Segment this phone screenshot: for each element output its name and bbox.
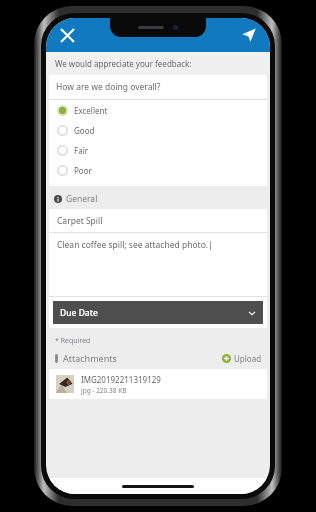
button[interactable]: Due Date — [53, 301, 263, 324]
staticText: Attachments — [63, 352, 117, 364]
staticText: Clean coffee spill; see attached photo. — [57, 239, 209, 251]
staticText: Carpet Spill — [57, 215, 103, 227]
button[interactable]: Fair — [49, 140, 267, 160]
staticText: Fair — [74, 145, 89, 156]
button[interactable]: Excellent — [49, 100, 267, 120]
staticText: IMG20192211319129 — [81, 374, 161, 385]
staticText: Poor — [74, 165, 92, 176]
button[interactable]: Poor — [49, 160, 267, 180]
staticText: Good — [74, 125, 95, 136]
button[interactable]: Upload — [222, 353, 262, 364]
staticText: Upload — [234, 353, 262, 364]
staticText: Excellent — [74, 105, 108, 116]
staticText: jpg - 220.38 KB — [81, 386, 127, 395]
button[interactable]: Clean coffee spill; see attached photo. — [49, 233, 267, 296]
button[interactable]: Send — [234, 20, 264, 50]
button[interactable]: IMG20192211319129 — [49, 369, 267, 399]
button[interactable]: Close — [52, 20, 82, 50]
staticText: How are we doing overall? — [56, 81, 161, 93]
button[interactable]: Carpet Spill — [49, 209, 267, 232]
staticText: General — [66, 193, 98, 205]
staticText: We would appreciate your feedback: — [55, 58, 192, 69]
staticText: Due Date — [60, 307, 98, 319]
button[interactable]: Good — [49, 120, 267, 140]
staticText: * Required — [55, 336, 91, 346]
